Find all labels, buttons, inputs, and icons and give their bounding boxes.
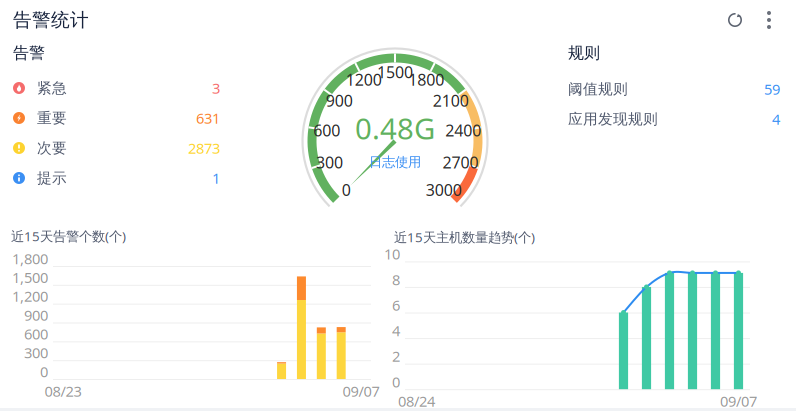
staticText: 0 [392, 372, 400, 391]
staticText: 1500 [377, 61, 413, 83]
staticText: 告警统计 [13, 8, 89, 31]
staticText: 6 [392, 295, 400, 315]
staticText: 3 [212, 78, 220, 98]
staticText: 重要 [37, 109, 67, 127]
staticText: 300 [24, 343, 48, 362]
staticText: 阈值规则 [568, 80, 628, 98]
button[interactable]: 阈值规则 [568, 78, 780, 100]
button[interactable]: 提示 [13, 167, 220, 189]
staticText: 近15天主机数量趋势(个) [394, 228, 535, 246]
staticText: 08/23 [44, 381, 81, 401]
staticText: 2 [392, 346, 400, 366]
staticText: 4 [772, 109, 780, 129]
staticText: 应用发现规则 [568, 110, 658, 128]
staticText: 提示 [37, 169, 67, 187]
staticText: 59 [764, 79, 780, 99]
staticText: 近15天告警个数(个) [11, 227, 126, 245]
button[interactable]: 紧急 [13, 77, 220, 99]
staticText: 900 [24, 305, 48, 325]
staticText: 1800 [408, 69, 444, 90]
staticText: 10 [384, 244, 400, 264]
staticText: 1,800 [12, 249, 48, 268]
button[interactable]: 应用发现规则 [568, 108, 780, 130]
staticText: 2400 [445, 120, 481, 141]
button[interactable]: 次要 [13, 137, 220, 159]
staticText: 600 [24, 324, 48, 344]
staticText: 09/07 [343, 381, 380, 401]
button[interactable]: More options [753, 4, 785, 36]
staticText: 规则 [568, 43, 600, 63]
staticText: 紧急 [37, 79, 67, 97]
staticText: 1 [212, 168, 220, 188]
staticText: 09/07 [720, 391, 757, 411]
staticText: 告警 [13, 43, 45, 63]
staticText: 3000 [426, 179, 462, 200]
button[interactable]: 重要 [13, 107, 220, 129]
staticText: 2873 [188, 138, 220, 158]
staticText: 次要 [37, 139, 67, 157]
staticText: 1,500 [12, 268, 48, 287]
staticText: 0 [342, 179, 351, 200]
staticText: 0.48G [355, 108, 435, 147]
staticText: 2100 [433, 90, 469, 111]
staticText: 8 [392, 270, 400, 289]
staticText: 631 [196, 108, 220, 128]
staticText: 0 [40, 362, 48, 381]
staticText: 日志使用 [369, 154, 421, 170]
button[interactable]: Refresh [719, 4, 751, 36]
staticText: 600 [313, 120, 340, 141]
staticText: 4 [392, 321, 400, 340]
staticText: 1,200 [12, 286, 48, 306]
staticText: 2700 [443, 152, 479, 173]
staticText: 08/24 [398, 391, 435, 411]
staticText: 1200 [346, 69, 382, 90]
staticText: 900 [326, 90, 353, 111]
staticText: 300 [316, 152, 343, 173]
